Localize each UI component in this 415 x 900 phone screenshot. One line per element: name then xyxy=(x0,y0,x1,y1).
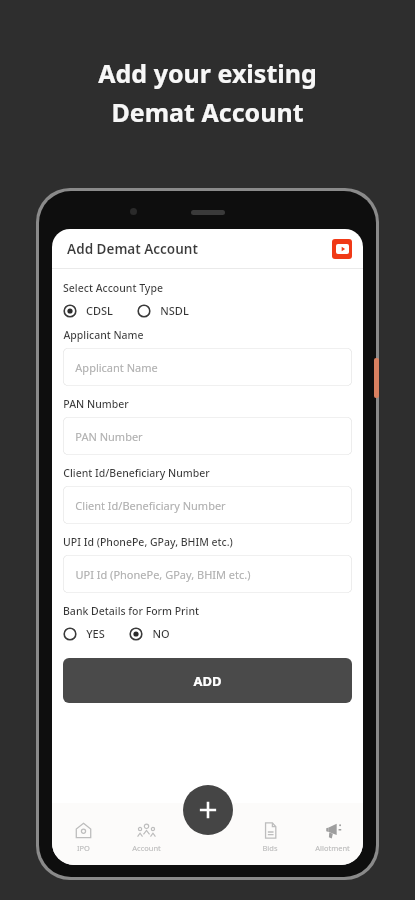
staticText: Applicant Name xyxy=(75,360,158,375)
staticText: Select Account Type xyxy=(63,281,163,295)
button[interactable]: UPI Id (PhonePe, GPay, BHIM etc.) xyxy=(63,555,352,593)
button[interactable]: Add Demat Account xyxy=(52,229,363,268)
button[interactable]: NSDL xyxy=(137,303,189,318)
button[interactable]: CDSL xyxy=(63,303,113,318)
staticText: Applicant Name xyxy=(63,328,144,342)
button[interactable]: PAN Number xyxy=(63,417,352,455)
button[interactable]: Allotment xyxy=(301,821,363,853)
staticText: NSDL xyxy=(160,303,189,318)
button[interactable]: IPO xyxy=(52,821,115,853)
staticText: YES xyxy=(86,626,105,641)
staticText: Bank Details for Form Print xyxy=(63,604,199,618)
staticText: UPI Id (PhonePe, GPay, BHIM etc.) xyxy=(63,535,233,549)
button[interactable]: Applicant Name xyxy=(63,348,352,386)
staticText: Add your existing xyxy=(98,56,317,90)
staticText: Allotment xyxy=(315,843,350,853)
button[interactable]: Bids xyxy=(239,821,301,853)
button[interactable]: YouTube tutorial xyxy=(332,239,352,259)
staticText: ADD xyxy=(193,672,222,690)
staticText: NO xyxy=(152,626,170,641)
button[interactable]: Account xyxy=(115,821,177,853)
staticText: Bids xyxy=(262,843,278,853)
staticText: Client Id/Beneficiary Number xyxy=(75,498,226,513)
staticText: PAN Number xyxy=(63,397,129,411)
staticText: UPI Id (PhonePe, GPay, BHIM etc.) xyxy=(75,567,251,582)
button[interactable]: NO xyxy=(129,626,170,641)
staticText: CDSL xyxy=(86,303,113,318)
staticText: IPO xyxy=(77,843,90,853)
button[interactable]: YES xyxy=(63,626,105,641)
staticText: Client Id/Beneficiary Number xyxy=(63,466,210,480)
button[interactable]: Add xyxy=(183,785,233,835)
staticText: Account xyxy=(132,843,161,853)
staticText: Demat Account xyxy=(111,95,304,129)
button[interactable]: Client Id/Beneficiary Number xyxy=(63,486,352,524)
staticText: Add Demat Account xyxy=(67,240,198,258)
staticText: PAN Number xyxy=(75,429,143,444)
button[interactable]: ADD xyxy=(63,658,352,703)
